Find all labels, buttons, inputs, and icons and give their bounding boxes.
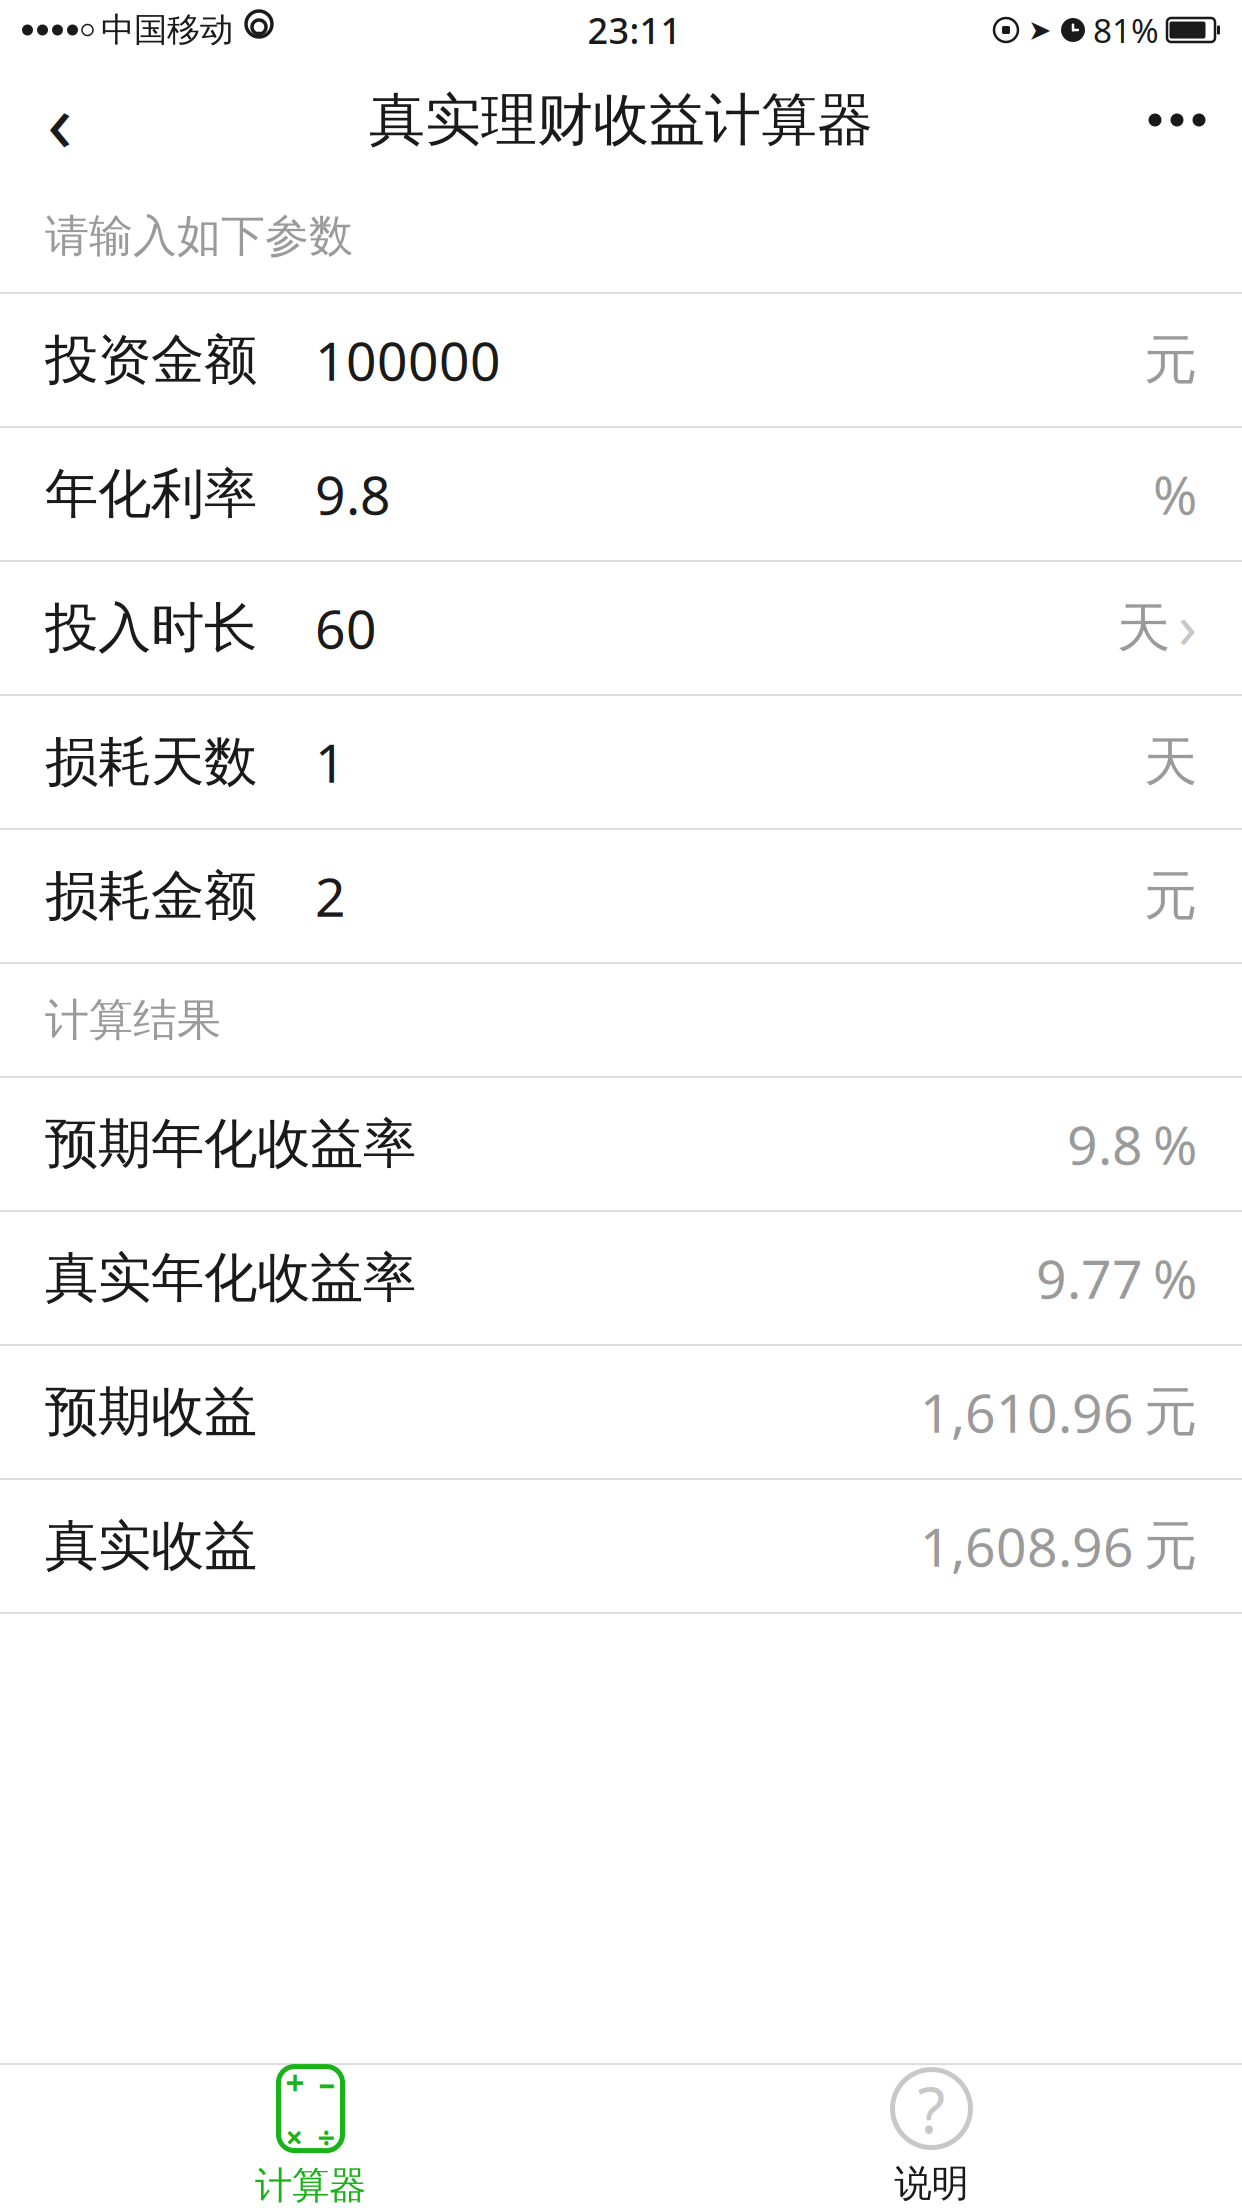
staticText: 元 xyxy=(1144,327,1197,393)
staticText: 计算器 xyxy=(255,2163,366,2208)
staticText: – xyxy=(318,2060,335,2104)
staticText: % xyxy=(1153,459,1197,529)
staticText: 计算结果 xyxy=(45,993,221,1047)
button[interactable]: More options xyxy=(1112,60,1242,180)
staticText: ÷ xyxy=(317,2116,335,2157)
staticText: ‹ xyxy=(47,65,73,175)
staticText: + xyxy=(285,2060,304,2104)
staticText: 投资金额 xyxy=(45,327,257,393)
staticText: × xyxy=(285,2116,303,2157)
staticText: 中国移动 xyxy=(101,9,233,50)
button[interactable]: 损耗天数 xyxy=(0,696,1242,828)
staticText: 天 xyxy=(1144,729,1197,795)
button[interactable]: Back xyxy=(0,60,120,180)
staticText: 60 xyxy=(315,593,377,663)
staticText: 损耗天数 xyxy=(45,729,257,795)
staticText: 23:11 xyxy=(587,6,681,54)
staticText: 1 xyxy=(315,727,346,797)
staticText: 81% xyxy=(1093,8,1159,52)
staticText: 元 xyxy=(1144,1379,1197,1445)
staticText: 预期年化收益率 xyxy=(45,1111,416,1177)
staticText: 年化利率 xyxy=(45,461,257,527)
button[interactable]: 年化利率 xyxy=(0,428,1242,560)
staticText: 真实年化收益率 xyxy=(45,1245,416,1311)
staticText: 天 xyxy=(1117,595,1170,661)
button[interactable]: 投入时长 xyxy=(0,562,1242,694)
staticText: 9.8 xyxy=(1067,1109,1143,1179)
staticText: 1,610.96 xyxy=(920,1377,1134,1447)
staticText: 投入时长 xyxy=(45,595,257,661)
staticText: 预期收益 xyxy=(45,1379,257,1445)
staticText: 损耗金额 xyxy=(45,863,257,929)
staticText: 说明 xyxy=(894,2161,968,2206)
staticText: ➤ xyxy=(1028,14,1051,46)
staticText: 元 xyxy=(1144,1513,1197,1579)
staticText: 2 xyxy=(315,861,346,931)
button[interactable]: 损耗金额 xyxy=(0,830,1242,962)
staticText: › xyxy=(1178,584,1197,666)
button[interactable]: + xyxy=(0,2065,621,2208)
staticText: ? xyxy=(917,2066,945,2151)
button[interactable]: ? xyxy=(621,2065,1242,2208)
staticText: 100000 xyxy=(315,325,501,395)
button[interactable]: 投资金额 xyxy=(0,294,1242,426)
staticText: 1,608.96 xyxy=(920,1511,1134,1581)
staticText: 9.8 xyxy=(315,459,391,529)
staticText: 真实理财收益计算器 xyxy=(369,86,873,154)
staticText: 9.77 xyxy=(1036,1243,1143,1313)
staticText: % xyxy=(1153,1243,1197,1313)
staticText: 请输入如下参数 xyxy=(45,209,353,263)
staticText: % xyxy=(1153,1109,1197,1179)
staticText: 真实收益 xyxy=(45,1513,257,1579)
staticText: 元 xyxy=(1144,863,1197,929)
